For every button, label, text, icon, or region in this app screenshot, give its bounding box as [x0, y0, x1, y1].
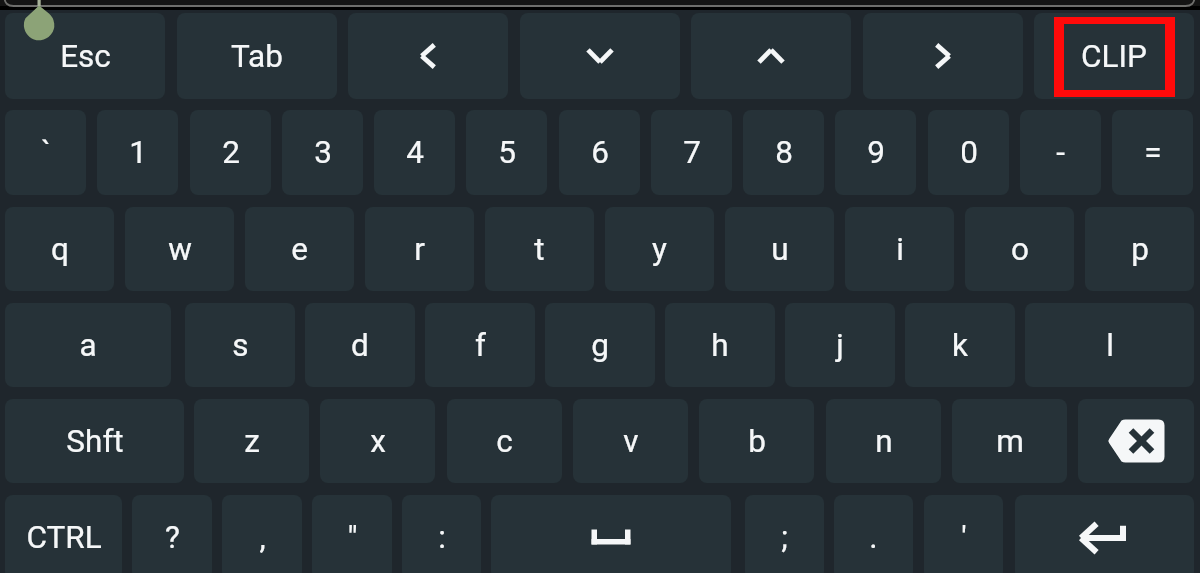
staticText: n [875, 423, 893, 460]
staticText: u [771, 231, 789, 268]
staticText: t [534, 231, 545, 268]
staticText: f [475, 327, 486, 364]
staticText: a [79, 327, 97, 364]
button[interactable]: h [665, 303, 775, 387]
staticText: w [168, 231, 192, 268]
button[interactable]: Space [491, 495, 731, 573]
staticText: = [1144, 134, 1162, 171]
button[interactable]: f [425, 303, 535, 387]
button[interactable]: = [1112, 110, 1193, 195]
button[interactable]: d [305, 303, 415, 387]
button[interactable]: 1 [97, 110, 178, 195]
button[interactable]: u [725, 207, 834, 291]
button[interactable]: x [320, 399, 435, 483]
staticText: j [836, 327, 844, 364]
button[interactable]: Backspace [1078, 399, 1194, 483]
button[interactable]: b [699, 399, 814, 483]
button[interactable]: ; [745, 495, 824, 573]
staticText: , [259, 519, 266, 556]
button[interactable]: 8 [743, 110, 824, 195]
staticText: l [1106, 327, 1114, 364]
staticText: ; [781, 519, 788, 556]
button[interactable]: . [834, 495, 913, 573]
staticText: p [1131, 231, 1149, 268]
staticText: 3 [314, 134, 332, 171]
staticText: e [291, 231, 308, 268]
button[interactable]: n [826, 399, 941, 483]
button[interactable]: m [952, 399, 1067, 483]
staticText: Esc [60, 38, 111, 75]
button[interactable]: 0 [928, 110, 1009, 195]
button[interactable]: y [605, 207, 714, 291]
staticText: ` [41, 134, 51, 171]
button[interactable]: k [905, 303, 1015, 387]
button[interactable]: , [222, 495, 302, 573]
staticText: 4 [406, 134, 424, 171]
staticText: d [351, 327, 369, 364]
button[interactable]: 6 [559, 110, 640, 195]
button[interactable]: 4 [374, 110, 455, 195]
staticText: g [591, 327, 609, 364]
button[interactable]: ` [5, 110, 86, 195]
button[interactable]: w [125, 207, 234, 291]
button[interactable]: q [5, 207, 114, 291]
staticText: CTRL [26, 519, 102, 556]
button[interactable]: Down [520, 13, 680, 99]
staticText: 2 [222, 134, 240, 171]
button[interactable]: p [1085, 207, 1194, 291]
staticText: 5 [498, 134, 516, 171]
button[interactable]: - [1020, 110, 1101, 195]
staticText: . [869, 519, 878, 556]
staticText: s [232, 327, 249, 364]
button[interactable]: CLIP [1034, 13, 1194, 99]
staticText: i [896, 231, 904, 268]
staticText: Tab [231, 38, 283, 75]
staticText: 1 [129, 134, 147, 171]
button[interactable]: i [845, 207, 954, 291]
button[interactable]: l [1025, 303, 1194, 387]
button[interactable]: Left [348, 13, 508, 99]
staticText: : [438, 519, 446, 556]
button[interactable]: 2 [190, 110, 271, 195]
staticText: v [623, 423, 639, 460]
staticText: 6 [591, 134, 609, 171]
button[interactable]: v [573, 399, 688, 483]
button[interactable]: g [545, 303, 655, 387]
button[interactable]: j [785, 303, 895, 387]
button[interactable]: c [447, 399, 562, 483]
button[interactable]: Shft [5, 399, 184, 483]
staticText: Shft [66, 423, 124, 460]
button[interactable]: s [185, 303, 295, 387]
staticText: 9 [867, 134, 885, 171]
button[interactable]: : [402, 495, 481, 573]
button[interactable]: Right [863, 13, 1023, 99]
staticText: ' [961, 519, 967, 556]
staticText: c [496, 423, 513, 460]
button[interactable]: r [365, 207, 474, 291]
button[interactable]: CTRL [5, 495, 122, 573]
button[interactable]: Enter [1015, 495, 1194, 573]
staticText: b [748, 423, 766, 460]
button[interactable]: Esc [5, 13, 165, 99]
button[interactable]: Tab [177, 13, 337, 99]
button[interactable]: t [485, 207, 594, 291]
button[interactable]: o [965, 207, 1074, 291]
button[interactable]: a [5, 303, 171, 387]
staticText: o [1011, 231, 1029, 268]
button[interactable]: 9 [835, 110, 916, 195]
staticText: z [244, 423, 260, 460]
button[interactable]: z [194, 399, 309, 483]
button[interactable]: Up [691, 13, 851, 99]
staticText: x [370, 423, 386, 460]
button[interactable]: " [312, 495, 392, 573]
button[interactable]: ? [132, 495, 212, 573]
button[interactable]: e [245, 207, 354, 291]
button[interactable]: 3 [282, 110, 363, 195]
staticText: h [711, 327, 729, 364]
button[interactable]: 7 [651, 110, 732, 195]
button[interactable]: 5 [466, 110, 547, 195]
staticText: " [347, 519, 358, 556]
staticText: 7 [683, 134, 701, 171]
staticText: ? [165, 519, 180, 556]
button[interactable]: ' [924, 495, 1003, 573]
